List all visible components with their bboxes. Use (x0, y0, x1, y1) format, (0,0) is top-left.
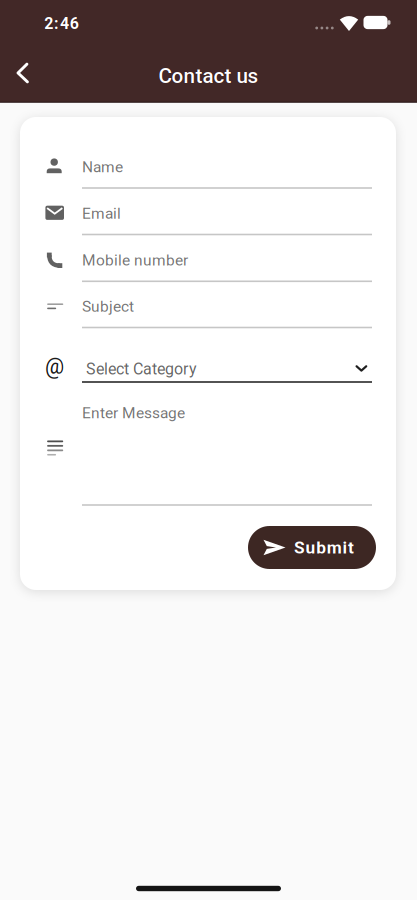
button[interactable]: Name (82, 145, 372, 189)
staticText: Email (82, 204, 121, 222)
button[interactable]: Subject (82, 284, 372, 328)
staticText: Submit (294, 537, 354, 558)
button[interactable]: Submit (248, 526, 376, 569)
button[interactable]: Select Category (82, 349, 372, 389)
staticText: Select Category (86, 360, 197, 378)
staticText: Name (82, 158, 123, 176)
button[interactable]: Enter Message (82, 385, 372, 509)
staticText: Contact us (158, 64, 258, 88)
staticText: Mobile number (82, 251, 188, 269)
staticText: Subject (82, 297, 134, 315)
staticText: @ (45, 354, 64, 379)
button[interactable]: Back (2, 53, 42, 93)
button[interactable]: Mobile number (82, 238, 372, 282)
staticText: Enter Message (82, 404, 185, 422)
staticText: 2:46 (44, 14, 79, 33)
button[interactable]: Email (82, 191, 372, 235)
